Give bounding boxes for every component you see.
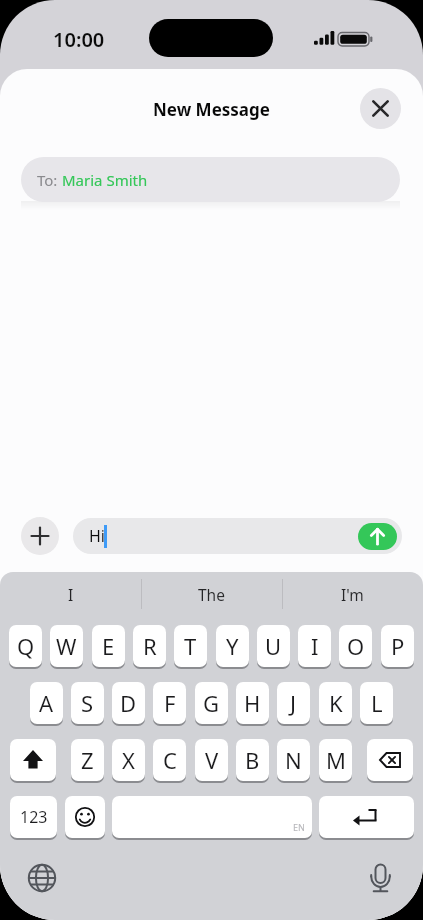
button[interactable] — [367, 739, 413, 781]
button[interactable]: E — [92, 625, 125, 667]
button[interactable]: R — [133, 625, 166, 667]
staticText: V — [205, 745, 219, 775]
staticText: I'm — [341, 584, 364, 605]
button[interactable]: L — [360, 682, 393, 724]
button[interactable]: M — [319, 739, 352, 781]
button[interactable]: O — [339, 625, 372, 667]
button[interactable]: C — [153, 739, 186, 781]
staticText: I — [68, 584, 74, 605]
staticText: 123 — [20, 806, 48, 828]
button[interactable]: 123 — [10, 796, 57, 838]
staticText: Maria Smith — [62, 170, 148, 190]
staticText: The — [198, 584, 225, 605]
staticText: Y — [226, 631, 239, 661]
button[interactable]: Hi — [73, 518, 402, 554]
staticText: A — [39, 688, 54, 718]
staticText: I — [311, 631, 319, 661]
staticText: EN — [293, 821, 305, 833]
staticText: New Message — [153, 98, 270, 121]
button[interactable] — [10, 739, 56, 781]
button[interactable]: K — [319, 682, 352, 724]
button[interactable]: S — [71, 682, 104, 724]
staticText: F — [164, 688, 176, 718]
staticText: B — [245, 745, 260, 775]
staticText: U — [265, 631, 282, 661]
staticText: Z — [81, 745, 94, 775]
button[interactable] — [319, 796, 414, 838]
staticText: O — [347, 631, 365, 661]
button[interactable]: J — [277, 682, 310, 724]
staticText: C — [163, 745, 177, 775]
button[interactable] — [358, 523, 397, 550]
staticText: G — [203, 688, 220, 718]
button[interactable]: V — [195, 739, 228, 781]
staticText: N — [285, 745, 302, 775]
button[interactable]: X — [112, 739, 145, 781]
button[interactable]: B — [236, 739, 269, 781]
button[interactable]: Y — [216, 625, 249, 667]
staticText: H — [244, 688, 261, 718]
button[interactable]: T — [174, 625, 207, 667]
button[interactable]: D — [112, 682, 145, 724]
staticText: P — [391, 631, 405, 661]
staticText: 10:00 — [53, 26, 105, 52]
button[interactable]: H — [236, 682, 269, 724]
button[interactable]: A — [30, 682, 63, 724]
button[interactable]: G — [195, 682, 228, 724]
button[interactable]: W — [50, 625, 83, 667]
button[interactable]: EN — [112, 796, 312, 838]
button[interactable] — [360, 88, 401, 129]
button[interactable]: N — [277, 739, 310, 781]
button[interactable]: P — [381, 625, 414, 667]
staticText: S — [81, 688, 94, 718]
button[interactable]: U — [257, 625, 290, 667]
button[interactable]: I — [298, 625, 331, 667]
staticText: E — [102, 631, 115, 661]
staticText: Hi — [89, 525, 105, 547]
staticText: R — [143, 631, 157, 661]
staticText: Q — [17, 631, 35, 661]
button[interactable] — [27, 863, 57, 893]
button[interactable] — [65, 796, 105, 838]
staticText: X — [122, 745, 135, 775]
staticText: W — [56, 631, 77, 661]
staticText: D — [120, 688, 137, 718]
button[interactable]: F — [153, 682, 186, 724]
button[interactable] — [21, 517, 59, 555]
staticText: To: — [37, 170, 62, 190]
staticText: L — [371, 688, 383, 718]
staticText: K — [329, 688, 343, 718]
button[interactable]: Z — [71, 739, 104, 781]
staticText: J — [290, 688, 297, 718]
button[interactable]: To: — [21, 157, 400, 202]
staticText: M — [326, 745, 346, 775]
staticText: T — [184, 631, 197, 661]
button[interactable] — [366, 860, 396, 894]
button[interactable]: Q — [9, 625, 42, 667]
